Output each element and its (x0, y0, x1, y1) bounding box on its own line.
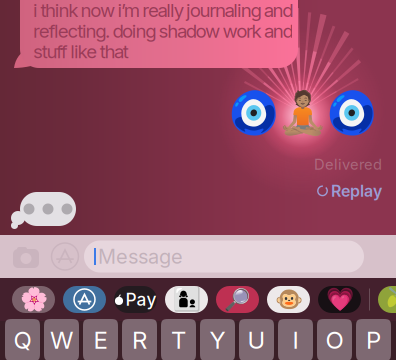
staticText: E (93, 325, 107, 354)
staticText: Message (98, 244, 183, 269)
button[interactable]: R (122, 319, 157, 360)
staticText: 🧿 (325, 89, 376, 137)
staticText: 🫒 (385, 286, 396, 313)
staticText: 🧘🏽 (276, 89, 327, 137)
button[interactable]: P (356, 319, 391, 360)
button[interactable]: Digital Touch (318, 286, 361, 313)
staticText: P (366, 325, 381, 354)
staticText: O (325, 325, 343, 354)
staticText: 🧿 (227, 89, 278, 137)
button[interactable]: Photos (12, 286, 55, 313)
button[interactable]: U (239, 319, 274, 360)
staticText: Pay (125, 289, 156, 310)
staticText: Y (209, 325, 225, 354)
button[interactable]: W (44, 319, 79, 360)
button[interactable]: T (161, 319, 196, 360)
staticText: Delivered (314, 155, 382, 173)
button[interactable]: Y (200, 319, 235, 360)
staticText: reflecting. doing shadow work and (33, 20, 293, 42)
button[interactable]: Q (5, 319, 40, 360)
button[interactable]: O (317, 319, 352, 360)
staticText: stuff like that (33, 40, 129, 63)
staticText: 🌸 (19, 286, 47, 313)
staticText: U (247, 325, 265, 354)
button[interactable]: App Store (63, 286, 106, 313)
button[interactable]: Replay (317, 181, 382, 201)
staticText: Replay (331, 181, 382, 201)
button[interactable]: Memoji (165, 286, 208, 313)
button[interactable]: E (83, 319, 118, 360)
button[interactable]: Take photo (6, 240, 46, 272)
staticText: Q (13, 325, 31, 354)
staticText: R (132, 325, 147, 354)
staticText: 🔎 (224, 287, 251, 312)
button[interactable]: I (278, 319, 313, 360)
staticText: 👩‍👦 (172, 286, 200, 313)
staticText: T (171, 325, 186, 354)
staticText: W (50, 325, 73, 354)
staticText: i think now i’m really journaling and (33, 0, 293, 22)
button[interactable]: Animoji (267, 286, 310, 313)
button[interactable]: More apps (378, 286, 396, 313)
button[interactable]: Apple Pay (114, 286, 157, 313)
staticText: 💗 (325, 286, 353, 313)
staticText: 🐵 (274, 286, 302, 313)
button[interactable]: Images (216, 286, 259, 313)
button[interactable]: Message (84, 240, 364, 272)
staticText: I (292, 325, 298, 354)
button[interactable]: iMessage apps (46, 240, 84, 272)
